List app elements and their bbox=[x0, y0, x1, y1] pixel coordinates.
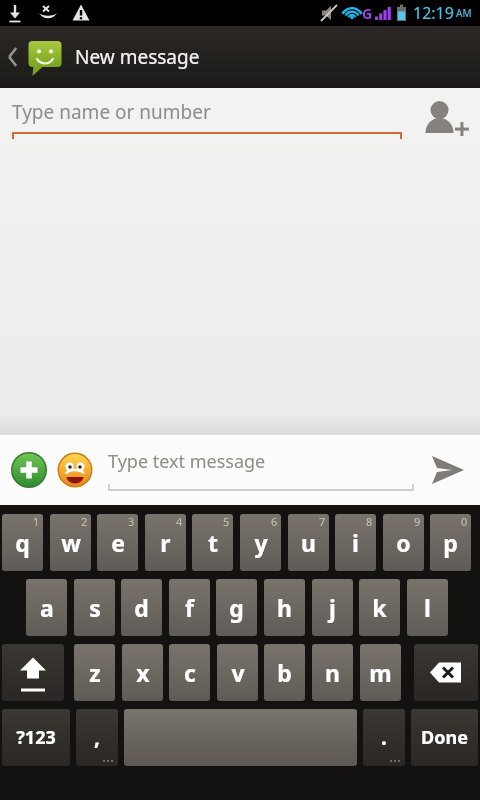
staticText: f bbox=[185, 592, 194, 623]
button[interactable]: l bbox=[407, 579, 448, 636]
button[interactable]: s bbox=[74, 579, 115, 636]
button[interactable]: p bbox=[430, 514, 471, 571]
staticText: k bbox=[372, 592, 387, 623]
staticText: p bbox=[443, 527, 458, 558]
staticText: Type text message bbox=[108, 449, 266, 474]
button[interactable]: Done bbox=[411, 709, 478, 766]
staticText: q bbox=[15, 527, 30, 558]
button[interactable]: ?123 bbox=[2, 709, 70, 766]
staticText: c bbox=[184, 657, 196, 688]
staticText: y bbox=[254, 527, 268, 558]
staticText: m bbox=[369, 657, 392, 688]
staticText: 12:19 bbox=[413, 2, 454, 24]
button[interactable]: h bbox=[264, 579, 305, 636]
staticText: 9 bbox=[414, 514, 421, 529]
button[interactable]: q bbox=[2, 514, 43, 571]
button[interactable]: Delete bbox=[414, 644, 478, 701]
button[interactable]: , bbox=[76, 709, 118, 766]
button[interactable]: v bbox=[217, 644, 258, 701]
button[interactable]: b bbox=[264, 644, 305, 701]
staticText: 3 bbox=[128, 514, 135, 529]
staticText: 6 bbox=[271, 514, 278, 529]
staticText: e bbox=[111, 527, 125, 558]
staticText: z bbox=[89, 657, 101, 688]
staticText: 1 bbox=[33, 514, 40, 529]
staticText: 4 bbox=[176, 514, 183, 529]
staticText: d bbox=[134, 592, 149, 623]
staticText: b bbox=[277, 657, 292, 688]
button[interactable]: e bbox=[97, 514, 138, 571]
button[interactable]: Add attachment bbox=[6, 447, 52, 493]
button[interactable]: Shift bbox=[2, 644, 64, 701]
button[interactable]: o bbox=[383, 514, 424, 571]
button[interactable]: Type text message bbox=[108, 449, 414, 492]
button[interactable]: Send bbox=[418, 441, 476, 499]
staticText: l bbox=[424, 592, 431, 623]
staticText: v bbox=[231, 657, 245, 688]
button[interactable]: t bbox=[192, 514, 233, 571]
button[interactable]: f bbox=[169, 579, 210, 636]
button[interactable]: x bbox=[122, 644, 163, 701]
button[interactable]: a bbox=[26, 579, 67, 636]
staticText: a bbox=[40, 592, 54, 623]
staticText: 8 bbox=[366, 514, 373, 529]
staticText: ?123 bbox=[16, 725, 56, 750]
staticText: Type name or number bbox=[12, 99, 211, 125]
staticText: x bbox=[136, 657, 150, 688]
staticText: . bbox=[381, 723, 387, 752]
button[interactable]: . bbox=[363, 709, 405, 766]
button[interactable]: Navigate up bbox=[0, 26, 480, 88]
button[interactable]: j bbox=[312, 579, 353, 636]
staticText: i bbox=[352, 527, 359, 558]
button[interactable]: m bbox=[360, 644, 401, 701]
staticText: u bbox=[301, 527, 316, 558]
staticText: , bbox=[94, 723, 100, 752]
button[interactable]: Type name or number bbox=[12, 99, 402, 140]
button[interactable]: z bbox=[74, 644, 115, 701]
staticText: w bbox=[61, 527, 81, 558]
staticText: t bbox=[208, 527, 218, 558]
button[interactable]: i bbox=[335, 514, 376, 571]
staticText: h bbox=[277, 592, 292, 623]
staticText: G bbox=[362, 4, 373, 23]
staticText: 7 bbox=[319, 514, 326, 529]
button[interactable]: y bbox=[240, 514, 281, 571]
staticText: j bbox=[329, 592, 336, 623]
staticText: o bbox=[396, 527, 411, 558]
button[interactable]: n bbox=[312, 644, 353, 701]
button[interactable]: g bbox=[216, 579, 257, 636]
staticText: s bbox=[89, 592, 101, 623]
other: Navigate up bbox=[4, 40, 22, 74]
staticText: New message bbox=[75, 44, 200, 70]
button[interactable]: k bbox=[359, 579, 400, 636]
button[interactable]: d bbox=[121, 579, 162, 636]
button[interactable]: Space bbox=[124, 709, 357, 766]
button[interactable]: r bbox=[145, 514, 186, 571]
button[interactable]: Insert emoticon bbox=[52, 447, 98, 493]
button[interactable]: u bbox=[288, 514, 329, 571]
staticText: r bbox=[160, 527, 171, 558]
staticText: 0 bbox=[461, 514, 468, 529]
staticText: AM bbox=[456, 6, 472, 20]
staticText: g bbox=[229, 592, 244, 623]
button[interactable]: c bbox=[169, 644, 210, 701]
button[interactable]: w bbox=[50, 514, 91, 571]
staticText: Done bbox=[421, 725, 468, 750]
staticText: 2 bbox=[81, 514, 88, 529]
staticText: n bbox=[325, 657, 340, 688]
staticText: 5 bbox=[223, 514, 230, 529]
button[interactable]: Add recipient from contacts bbox=[416, 91, 472, 147]
